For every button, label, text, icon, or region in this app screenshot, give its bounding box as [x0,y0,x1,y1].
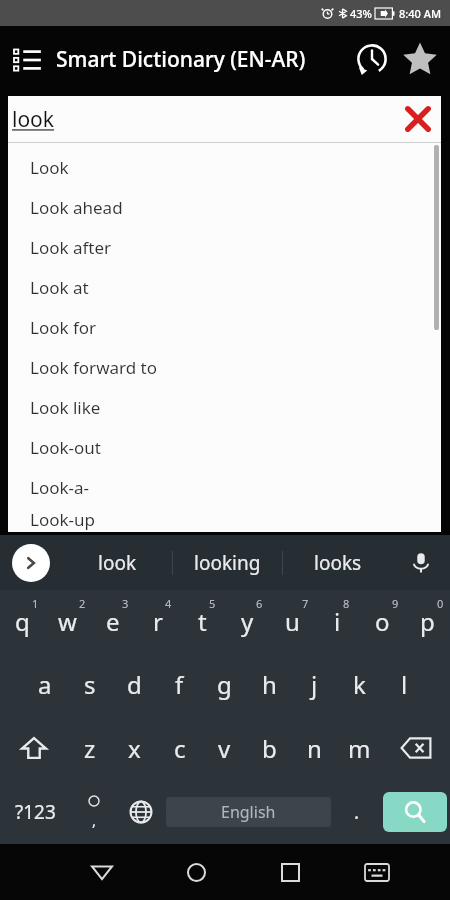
button[interactable]: t [180,590,225,653]
button[interactable]: b [247,716,292,780]
button[interactable]: y [225,590,270,653]
button[interactable]: ?123 [0,780,70,844]
staticText: i [334,605,341,638]
button[interactable]: Shift [0,716,67,780]
staticText: w [58,605,77,638]
staticText: x [128,732,141,765]
staticText: Look at [30,276,89,299]
button[interactable]: Look like [8,387,441,427]
staticText: Look after [30,236,112,259]
button[interactable]: Look after [8,227,441,267]
button[interactable]: Clear [395,96,441,142]
button[interactable]: x [112,716,157,780]
button[interactable]: Home [173,849,219,895]
staticText: looking [194,550,261,576]
staticText: Look for [30,316,97,339]
button[interactable]: n [292,716,337,780]
button[interactable]: Look-a- [8,467,441,507]
button[interactable]: Look forward to [8,347,441,387]
button[interactable]: Look [8,147,441,187]
button[interactable]: c [157,716,202,780]
staticText: English [221,801,276,823]
button[interactable]: Look ahead [8,187,441,227]
staticText: h [262,668,277,701]
button[interactable]: i [315,590,360,653]
staticText: f [175,668,184,701]
staticText: looks [314,550,362,576]
staticText: q [15,605,30,638]
staticText: s [84,668,96,701]
staticText: Look-a- [30,476,90,499]
button[interactable]: Look at [8,267,441,307]
button[interactable]: a [22,653,67,716]
button[interactable]: Favorites [396,35,444,83]
button[interactable]: r [135,590,180,653]
button[interactable]: Look for [8,307,441,347]
button[interactable]: u [270,590,315,653]
staticText: 8:40 AM [399,6,442,21]
staticText: z [84,732,96,765]
staticText: 7 [302,596,309,611]
button[interactable]: w [45,590,90,653]
button[interactable]: h [247,653,292,716]
button[interactable]: q [0,590,45,653]
button[interactable]: History [348,35,396,83]
button[interactable]: looks [283,535,392,590]
button[interactable]: m [337,716,382,780]
staticText: u [285,605,300,638]
staticText: 3 [122,596,129,611]
staticText: 8 [343,596,350,611]
button[interactable]: English [166,797,331,827]
staticText: d [127,668,142,701]
staticText: g [217,668,232,701]
button[interactable]: Recent apps [267,849,313,895]
staticText: c [174,732,186,765]
button[interactable]: More suggestions [12,544,50,582]
button[interactable]: Look-out [8,427,441,467]
staticText: o [375,605,390,638]
staticText: e [106,605,120,638]
staticText: , [92,810,97,830]
button[interactable]: . [333,780,380,844]
button[interactable]: k [337,653,382,716]
staticText: look [98,550,137,576]
button[interactable]: Change language [117,780,164,844]
button[interactable]: Search [383,792,447,832]
staticText: k [353,668,366,701]
button[interactable]: o [360,590,405,653]
button[interactable]: Backspace [382,716,450,780]
staticText: a [38,668,52,701]
staticText: 1 [32,596,39,611]
staticText: r [153,605,163,638]
button[interactable]: e [90,590,135,653]
staticText: Look ahead [30,196,123,219]
button[interactable]: f [157,653,202,716]
button[interactable]: z [67,716,112,780]
staticText: Look [30,156,69,179]
staticText: 4 [165,596,172,611]
staticText: Look like [30,396,101,419]
button[interactable]: v [202,716,247,780]
button[interactable]: s [67,653,112,716]
staticText: b [262,732,277,765]
button[interactable]: l [382,653,427,716]
button[interactable]: Emoji and comma [70,780,117,844]
staticText: look [12,105,55,134]
button[interactable]: looking [173,535,282,590]
button[interactable]: j [292,653,337,716]
button[interactable]: Voice input [400,542,442,584]
button[interactable]: d [112,653,157,716]
button[interactable]: look [62,535,172,590]
button[interactable]: g [202,653,247,716]
staticText: y [241,605,254,638]
staticText: Look-up [30,508,95,531]
staticText: Look-out [30,436,101,459]
button[interactable]: Back [79,849,125,895]
button[interactable]: p [405,590,450,653]
staticText: 2 [79,596,86,611]
button[interactable]: Menu [8,39,48,79]
button[interactable]: Look-up [8,507,441,532]
button[interactable]: Hide keyboard [354,849,400,895]
staticText: 43% [350,6,372,21]
staticText: p [420,605,435,638]
